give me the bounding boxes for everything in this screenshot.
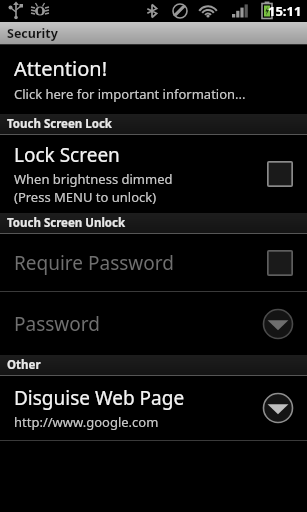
staticText: Password — [14, 311, 261, 337]
button[interactable]: Require Password — [0, 234, 307, 291]
staticText: When brightness dimmed — [14, 170, 173, 188]
staticText: Security — [7, 25, 58, 42]
button[interactable]: Checkbox — [265, 248, 295, 278]
staticText: Require Password — [14, 250, 265, 276]
button[interactable]: Open selector — [261, 391, 295, 425]
staticText: Click here for important information... — [14, 85, 246, 103]
staticText: 15:11 — [268, 2, 302, 20]
button[interactable]: Disguise Web Page — [0, 376, 307, 440]
button[interactable]: Open selector — [261, 307, 295, 341]
staticText: Attention! — [14, 55, 108, 82]
button[interactable]: Lock Screen — [0, 135, 307, 213]
staticText: Touch Screen Lock — [7, 116, 112, 132]
staticText: (Press MENU to unlock) — [14, 188, 157, 206]
button[interactable]: Password — [0, 292, 307, 355]
staticText: Other — [7, 357, 41, 373]
staticText: Lock Screen — [14, 142, 120, 168]
button[interactable]: Attention! — [0, 45, 307, 114]
staticText: http://www.google.com — [14, 413, 159, 431]
staticText: Disguise Web Page — [14, 385, 185, 411]
staticText: Touch Screen Unlock — [7, 215, 126, 231]
button[interactable]: Checkbox — [265, 159, 295, 189]
